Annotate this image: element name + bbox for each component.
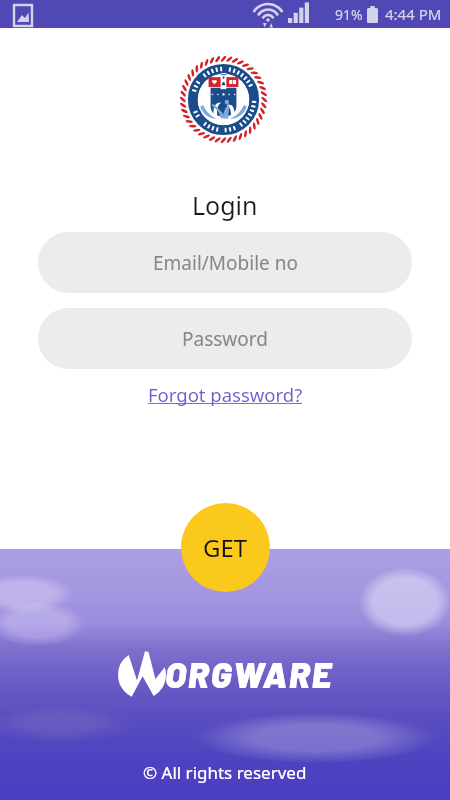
- staticText: ORGWARE: [165, 653, 333, 695]
- button[interactable]: Email/Mobile no: [38, 232, 412, 293]
- staticText: 4:44 PM: [385, 4, 442, 24]
- staticText: GET: [203, 531, 248, 564]
- button[interactable]: Forgot password?: [142, 380, 309, 409]
- staticText: Login: [192, 188, 258, 222]
- staticText: © All rights reserved: [143, 761, 307, 784]
- staticText: 91%: [335, 5, 363, 24]
- staticText: Email/Mobile no: [153, 250, 298, 276]
- staticText: Password: [182, 326, 268, 352]
- button[interactable]: Password: [38, 308, 412, 369]
- button[interactable]: GET: [181, 503, 270, 592]
- staticText: Forgot password?: [148, 382, 303, 407]
